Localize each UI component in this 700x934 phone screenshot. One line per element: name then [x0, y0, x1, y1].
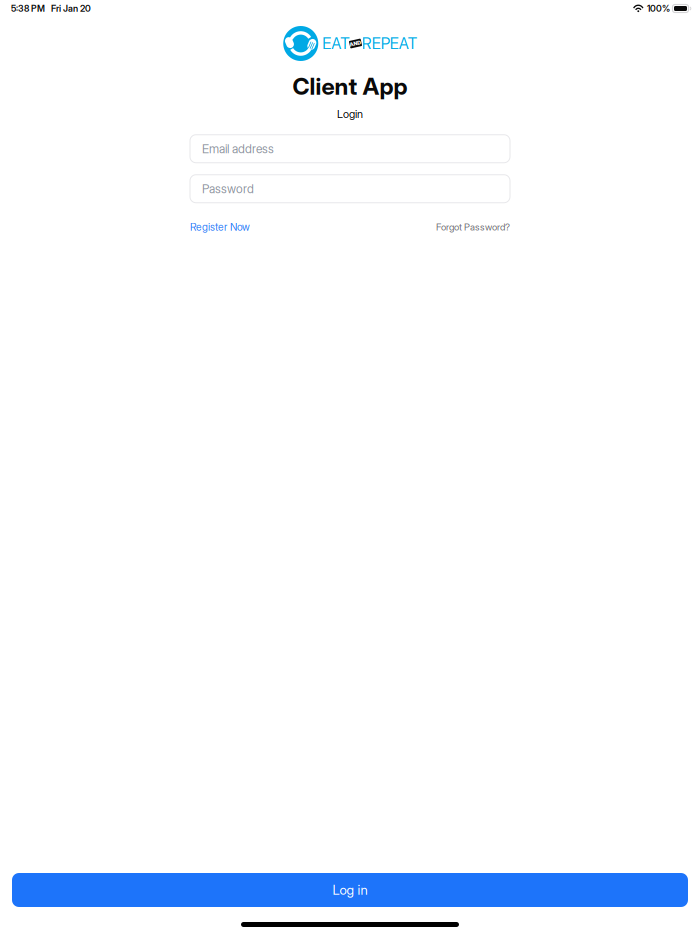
button[interactable]: Register Now [190, 221, 250, 233]
staticText: 5:38 PM [11, 3, 45, 14]
staticText: Client App [292, 72, 407, 100]
staticText: EAT [322, 34, 349, 53]
staticText: REPEAT [362, 34, 417, 53]
staticText: Email address [202, 141, 274, 156]
staticText: Fri Jan 20 [51, 3, 91, 14]
button[interactable]: Email address [190, 135, 510, 163]
button[interactable]: Password [190, 175, 510, 203]
staticText: Log in [332, 882, 367, 898]
button[interactable]: Forgot Password? [436, 221, 510, 233]
button[interactable]: Log in [12, 873, 688, 907]
staticText: AND [349, 40, 361, 47]
staticText: Password [202, 181, 254, 196]
staticText: Register Now [190, 221, 250, 233]
staticText: 100% [647, 3, 670, 14]
staticText: Login [337, 107, 363, 121]
staticText: Forgot Password? [436, 221, 510, 233]
